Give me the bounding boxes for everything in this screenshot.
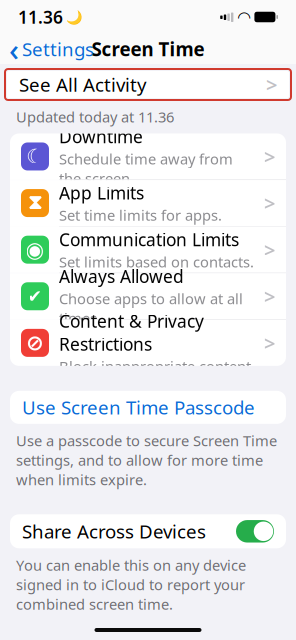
staticText: Always Allowed [59, 265, 184, 288]
staticText: Settings [22, 37, 94, 61]
staticText: > [264, 283, 275, 310]
staticText: > [264, 330, 275, 356]
staticText: ◠ [238, 8, 250, 26]
button[interactable]: See All Activity [5, 69, 291, 100]
staticText: Use a passcode to secure Screen Time set… [16, 431, 277, 489]
staticText: Updated today at 11.36 [16, 107, 174, 126]
staticText: Downtime [59, 125, 143, 148]
staticText: > [264, 143, 275, 170]
button[interactable]: ☾ [10, 133, 286, 179]
staticText: ⧗ [28, 193, 42, 213]
staticText: > [266, 71, 277, 98]
staticText: App Limits [59, 181, 144, 204]
button[interactable]: ‹ [0, 34, 103, 64]
staticText: Schedule time away from the screen. [59, 149, 233, 188]
button[interactable]: Use Screen Time Passcode [10, 391, 286, 424]
staticText: ☾ [26, 145, 44, 168]
staticText: ◉ [25, 238, 44, 262]
staticText: Communication Limits [59, 228, 239, 251]
button[interactable]: ✔ [10, 273, 286, 319]
staticText: Choose apps to allow at all times. [59, 289, 243, 328]
staticText: > [264, 236, 275, 263]
staticText: Use Screen Time Passcode [22, 395, 255, 420]
staticText: Content & Privacy Restrictions [59, 310, 204, 356]
staticText: You can enable this on any device signed… [16, 555, 246, 614]
staticText: Set limits based on contacts. [59, 252, 254, 271]
staticText: ‹ [9, 29, 19, 69]
staticText: Screen Time [91, 37, 204, 61]
button[interactable]: Share Across Devices [10, 514, 286, 548]
staticText: ✔ [27, 286, 42, 306]
staticText: 🌙 [66, 9, 83, 25]
staticText: > [264, 190, 275, 216]
button[interactable]: ◉ [10, 227, 286, 273]
staticText: Set time limits for apps. [59, 205, 222, 225]
staticText: Share Across Devices [22, 519, 206, 544]
staticText: 11.36 [18, 5, 63, 28]
staticText: See All Activity [19, 72, 147, 97]
staticText: Block inappropriate content. [59, 357, 255, 376]
button[interactable]: Turn Off Screen Time [10, 630, 286, 640]
button[interactable]: ⧗ [10, 180, 286, 226]
staticText: ⊘ [26, 331, 44, 355]
button[interactable]: ⊘ [10, 320, 286, 366]
